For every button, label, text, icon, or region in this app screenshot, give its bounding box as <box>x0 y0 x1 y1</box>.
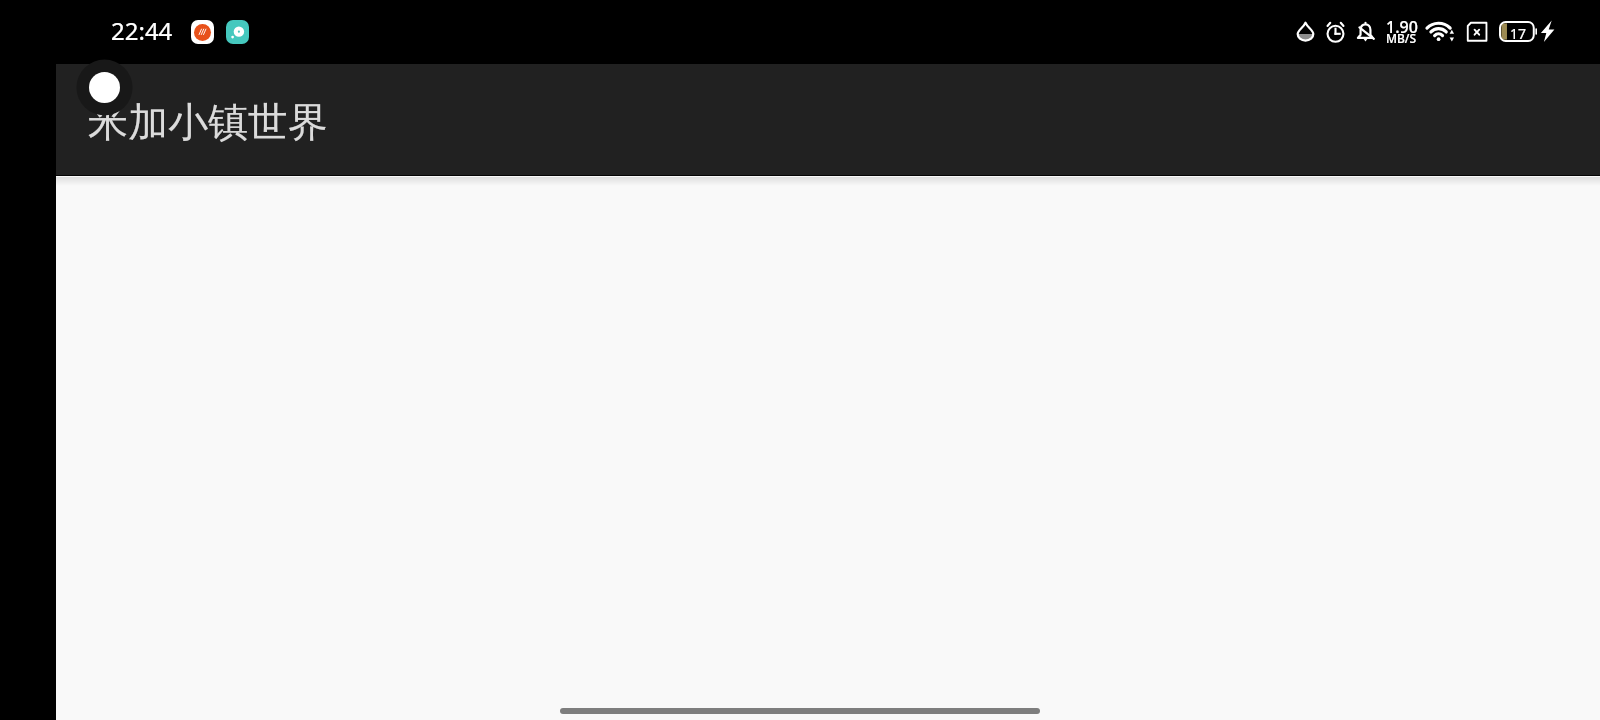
staticText: 1.90 <box>1386 16 1418 38</box>
staticText: 22:44 <box>111 14 173 47</box>
staticText: 17 <box>1510 24 1527 43</box>
button[interactable]: Page content <box>56 176 1600 720</box>
staticText: 米加小镇世界 <box>88 97 328 147</box>
button[interactable]: Back <box>75 58 134 117</box>
staticText: MB/S <box>1386 30 1417 46</box>
button[interactable]: Home <box>560 708 1040 714</box>
